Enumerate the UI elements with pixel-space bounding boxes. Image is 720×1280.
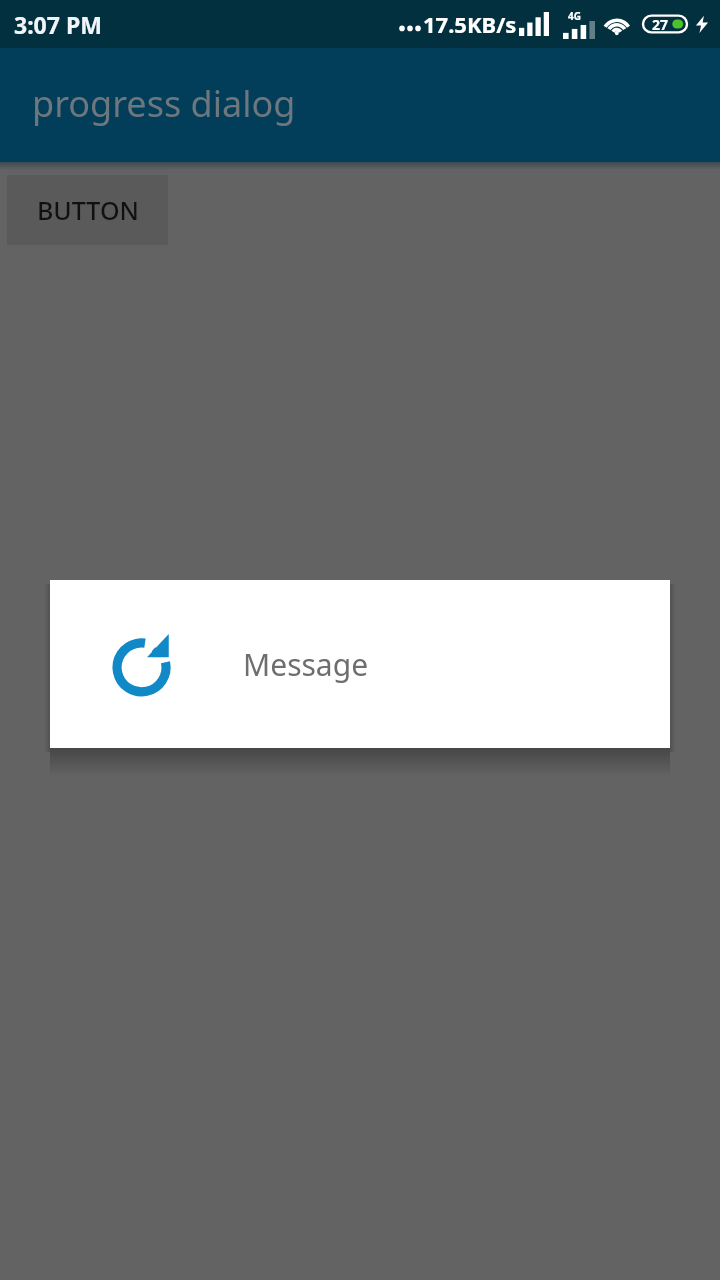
button[interactable]: BUTTON xyxy=(7,175,168,245)
staticText: Message xyxy=(243,644,369,685)
button[interactable]: Loading xyxy=(50,580,670,748)
staticText: 17.5KB/s xyxy=(423,9,517,39)
staticText: BUTTON xyxy=(37,193,139,227)
staticText: 3:07 PM xyxy=(14,9,102,40)
staticText: progress dialog xyxy=(32,79,296,128)
other: Loading xyxy=(113,630,181,698)
staticText: 27 xyxy=(652,15,669,34)
staticText: 4G xyxy=(568,9,581,23)
